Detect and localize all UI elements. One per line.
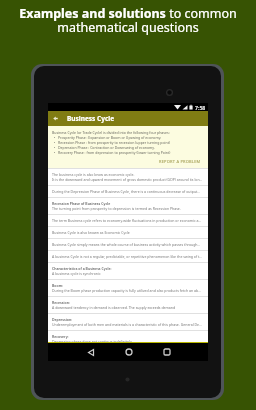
staticText: Characteristics of a Business Cycle: [52,266,112,271]
staticText: • [54,135,56,140]
staticText: 7:58 [195,104,206,111]
button[interactable]: Business Cycle is also known as Economic… [48,227,208,238]
staticText: Prosperity Phase : Expansion or Boom or … [58,135,162,140]
button[interactable]: Recession Phase of Business Cycle [48,198,208,214]
staticText: A business Cycle is not a regular, predi… [52,254,203,259]
button[interactable]: Home [114,343,143,361]
staticText: Examples and solutions to common mathema… [19,5,237,35]
button[interactable]: Business Cycle simply means the whole co… [48,239,208,250]
staticText: Depression Phase : Contraction or Downsw… [58,145,155,150]
staticText: During the Depression Phase of Business … [52,189,201,194]
button[interactable]: Back [48,111,62,126]
staticText: Recession Phase of Business Cycle [52,201,111,206]
staticText: Business Cycle simply means the whole co… [52,242,201,247]
staticText: Underemployment of both men and material… [52,322,202,327]
staticText: The term Business cycle refers to econom… [52,218,202,223]
staticText: The business cycle is also know as econo… [52,172,135,177]
button[interactable]: A business Cycle is not a regular, predi… [48,251,208,262]
staticText: Depression phase done not continue indef… [52,339,132,344]
staticText: • [54,145,56,150]
button[interactable]: Characteristics of a Business Cycle: [48,263,208,279]
staticText: Business Cycle is also known as Economic… [52,230,130,235]
staticText: Recession: [52,300,70,305]
button[interactable]: Boom: [48,280,208,296]
staticText: The turning point from prosperity to dep… [52,206,181,211]
button[interactable]: Back [76,343,105,361]
button[interactable]: Recovery: [48,331,208,347]
button[interactable]: The term Business cycle refers to econom… [48,215,208,226]
staticText: Boom: [52,283,63,288]
staticText: A downward tendency in demand is observe… [52,305,176,310]
staticText: Recession Phase : from prosperity to rec… [58,140,170,145]
button[interactable]: Depression: [48,314,208,330]
staticText: During the Boom phase production capacit… [52,288,201,293]
staticText: REPORT A PROBLEM [159,159,201,164]
staticText: A business cycle is synchronic [52,271,101,276]
staticText: • [54,150,56,155]
staticText: Depression: [52,317,73,322]
button[interactable]: REPORT A PROBLEM [52,159,204,166]
button[interactable]: Recent apps [152,343,181,361]
staticText: Recovery: [52,334,69,339]
staticText: • [54,140,56,145]
button[interactable]: The business cycle is also know as econo… [48,169,208,185]
staticText: It is the downward and upward movement o… [52,177,203,182]
staticText: Business Cycle [67,114,115,123]
staticText: Recovery Phase : from depression to pros… [58,150,171,155]
button[interactable]: Recession: [48,297,208,313]
staticText: Business Cycle (or Trade Cycle) is divid… [52,130,170,135]
button[interactable]: During the Depression Phase of Business … [48,186,208,197]
